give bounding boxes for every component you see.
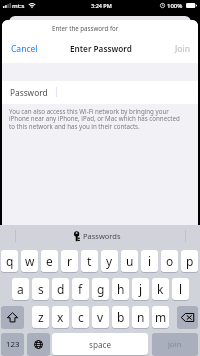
staticText: Passwords: [83, 231, 121, 241]
button[interactable]: n: [132, 306, 149, 328]
button[interactable]: Join: [170, 40, 195, 57]
button[interactable]: space: [52, 333, 148, 355]
staticText: d: [57, 281, 65, 297]
staticText: mt:s: [12, 2, 25, 10]
staticText: join: [168, 339, 182, 350]
button[interactable]: g: [92, 278, 109, 300]
staticText: 100%: [167, 2, 183, 10]
staticText: Enter the password for: [52, 24, 119, 32]
button[interactable]: Password: [2, 81, 198, 104]
button[interactable]: Next keyboard: [27, 333, 50, 355]
staticText: space: [89, 339, 112, 350]
staticText: i: [148, 253, 152, 269]
button[interactable]: i: [141, 250, 158, 272]
staticText: Enter Password: [70, 43, 132, 54]
staticText: j: [139, 281, 143, 297]
button[interactable]: l: [172, 278, 189, 300]
staticText: h: [117, 281, 125, 297]
staticText: p: [186, 253, 194, 269]
button[interactable]: r: [61, 250, 78, 272]
staticText: f: [78, 281, 83, 297]
button[interactable]: b: [112, 306, 129, 328]
staticText: You can also access this Wi-Fi network b…: [9, 107, 183, 131]
staticText: l: [179, 281, 183, 297]
staticText: y: [106, 253, 113, 269]
staticText: v: [97, 309, 104, 325]
button[interactable]: j: [132, 278, 149, 300]
button[interactable]: m: [152, 306, 169, 328]
staticText: 3:24 PM: [91, 2, 112, 9]
button[interactable]: Passwords: [74, 229, 121, 243]
staticText: a: [17, 281, 24, 297]
button[interactable]: h: [112, 278, 129, 300]
staticText: Join: [175, 43, 190, 55]
staticText: w: [25, 253, 35, 269]
button[interactable]: p: [181, 250, 198, 272]
staticText: o: [166, 253, 174, 269]
button[interactable]: t: [81, 250, 98, 272]
staticText: e: [46, 253, 53, 269]
staticText: u: [126, 253, 134, 269]
button[interactable]: k: [152, 278, 169, 300]
button[interactable]: q: [1, 250, 18, 272]
button[interactable]: c: [72, 306, 89, 328]
staticText: n: [137, 309, 145, 325]
staticText: s: [38, 281, 44, 297]
staticText: g: [97, 281, 105, 297]
staticText: 123: [6, 339, 20, 350]
staticText: b: [117, 309, 125, 325]
staticText: z: [38, 309, 44, 325]
button[interactable]: e: [41, 250, 58, 272]
staticText: c: [78, 309, 84, 325]
staticText: r: [67, 253, 72, 269]
staticText: k: [157, 281, 164, 297]
button[interactable]: o: [161, 250, 178, 272]
staticText: x: [57, 309, 64, 325]
button[interactable]: f: [72, 278, 89, 300]
button[interactable]: x: [52, 306, 69, 328]
staticText: m: [155, 309, 167, 325]
button[interactable]: w: [21, 250, 38, 272]
staticText: Password: [10, 87, 48, 98]
button[interactable]: d: [52, 278, 69, 300]
button[interactable]: y: [101, 250, 118, 272]
button[interactable]: Shift: [1, 306, 24, 328]
button[interactable]: join: [152, 333, 198, 355]
button[interactable]: z: [32, 306, 49, 328]
button[interactable]: Backspace: [177, 306, 198, 328]
button[interactable]: u: [121, 250, 138, 272]
button[interactable]: v: [92, 306, 109, 328]
button[interactable]: s: [32, 278, 49, 300]
staticText: Cancel: [11, 43, 38, 55]
button[interactable]: 123: [1, 333, 24, 355]
staticText: t: [87, 253, 92, 269]
staticText: q: [6, 253, 14, 269]
button[interactable]: Cancel: [6, 40, 43, 57]
button[interactable]: a: [12, 278, 29, 300]
